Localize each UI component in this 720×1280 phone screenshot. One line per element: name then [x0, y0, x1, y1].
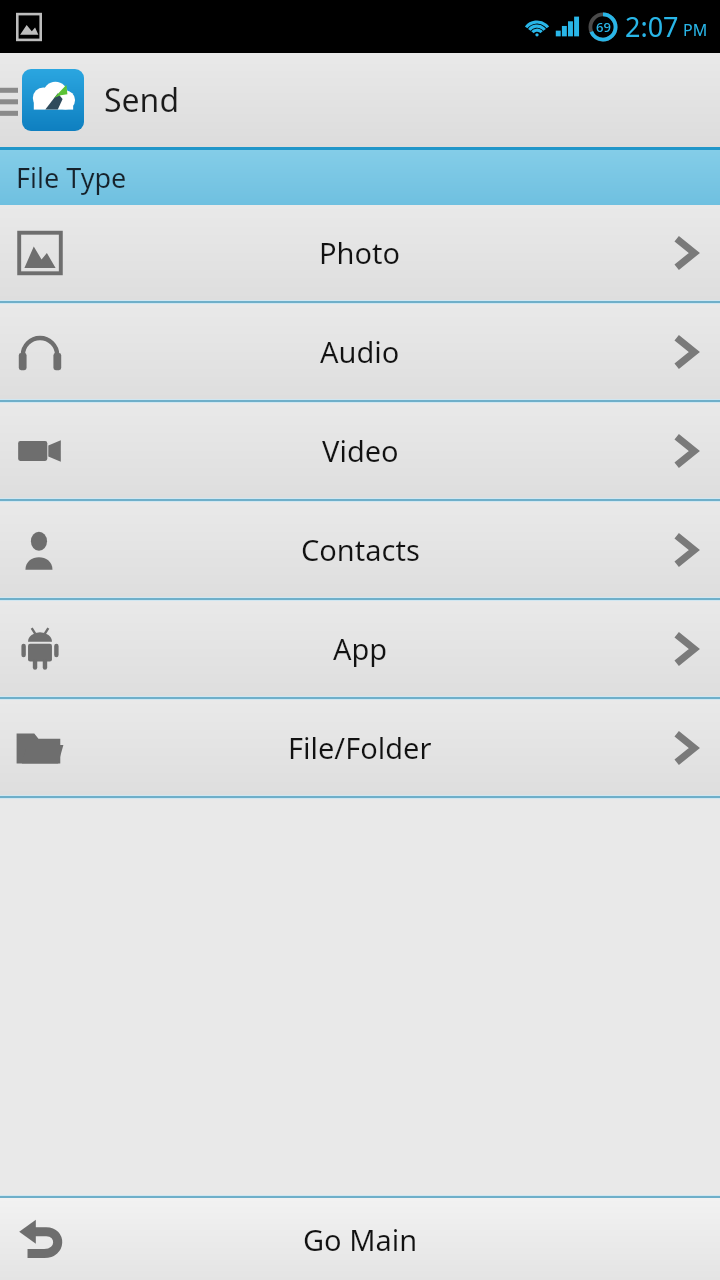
- staticText: App: [333, 629, 388, 668]
- button[interactable]: Audio: [0, 304, 720, 399]
- staticText: Contacts: [301, 530, 420, 569]
- button[interactable]: Photo: [0, 205, 720, 300]
- staticText: PM: [683, 19, 708, 41]
- button[interactable]: File/Folder: [0, 700, 720, 795]
- button[interactable]: Send: [22, 69, 180, 131]
- staticText: 2:07: [625, 8, 679, 45]
- staticText: File/Folder: [288, 728, 432, 767]
- staticText: Audio: [320, 332, 400, 371]
- staticText: Go Main: [303, 1220, 418, 1259]
- staticText: 69: [596, 18, 611, 36]
- staticText: Video: [322, 431, 399, 470]
- staticText: Photo: [319, 233, 401, 272]
- button[interactable]: Video: [0, 403, 720, 498]
- staticText: File Type: [16, 159, 127, 196]
- button[interactable]: Menu: [0, 82, 18, 118]
- button[interactable]: Go Main: [0, 1198, 720, 1280]
- button[interactable]: Contacts: [0, 502, 720, 597]
- staticText: Send: [104, 78, 180, 122]
- button[interactable]: App: [0, 601, 720, 696]
